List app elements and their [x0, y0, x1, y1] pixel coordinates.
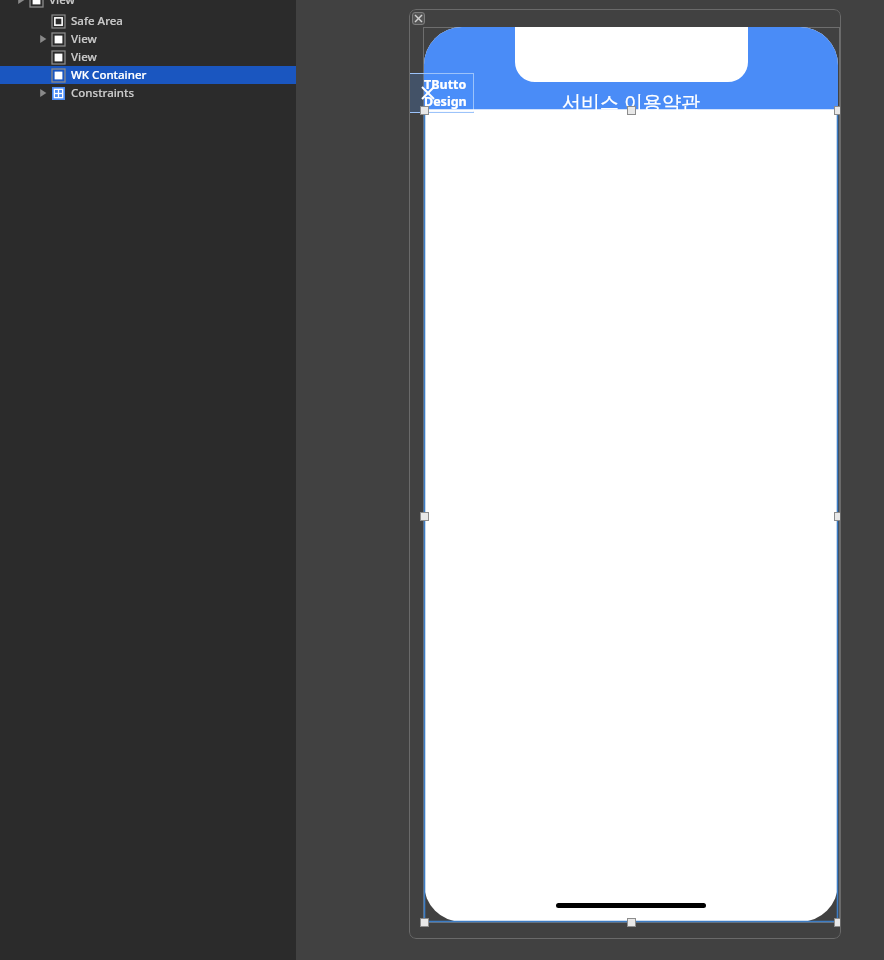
button[interactable]: Close	[412, 12, 425, 25]
button[interactable]: View	[0, 0, 296, 9]
staticText: View	[49, 0, 75, 8]
staticText: View	[71, 31, 97, 47]
staticText: Constraints	[71, 85, 135, 101]
staticText: TButton	[424, 76, 474, 93]
staticText: WK Container	[71, 67, 147, 83]
button[interactable]: TButton	[409, 73, 474, 113]
button[interactable]: Safe Area	[0, 12, 296, 30]
button[interactable]: Constraints	[0, 84, 296, 102]
staticText: Designa	[424, 93, 474, 110]
staticText: View	[71, 49, 97, 65]
button[interactable]: WK Container	[0, 66, 296, 84]
button[interactable]: View	[0, 30, 296, 48]
button[interactable]: View	[0, 48, 296, 66]
staticText: Safe Area	[71, 13, 123, 29]
button[interactable]	[424, 27, 838, 111]
staticText: 서비스 이용약관	[562, 89, 700, 115]
